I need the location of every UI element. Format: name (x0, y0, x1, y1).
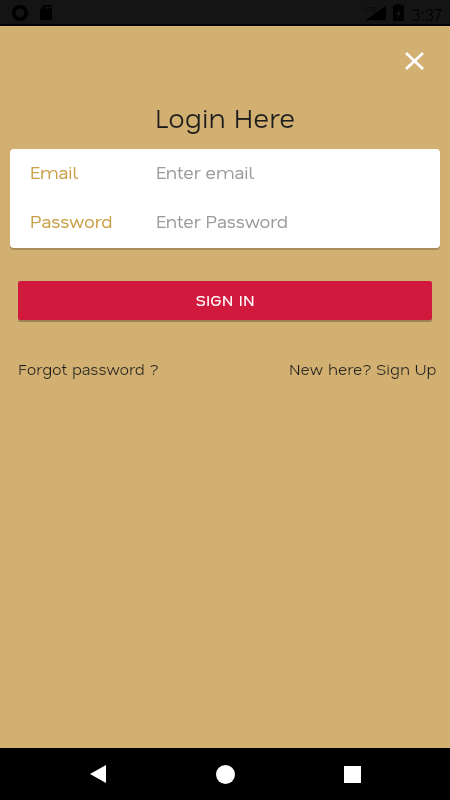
button[interactable]: Password (10, 200, 440, 240)
button[interactable]: New here? Sign Up (281, 352, 445, 385)
button[interactable]: Recent apps (328, 752, 376, 796)
button[interactable]: Back (74, 752, 122, 796)
button[interactable]: Close (396, 43, 432, 79)
staticText: Login Here (0, 99, 450, 135)
button[interactable]: Home (201, 752, 249, 796)
staticText: LTE (364, 4, 377, 14)
staticText: Email (30, 160, 156, 183)
staticText: 3:37 (411, 3, 442, 25)
staticText: Enter email (156, 160, 255, 183)
staticText: New here? Sign Up (289, 358, 437, 379)
staticText: Forgot password ? (18, 358, 159, 379)
staticText: Enter Password (156, 209, 288, 232)
button[interactable]: Email (10, 151, 440, 191)
button[interactable]: SIGN IN (18, 281, 432, 320)
staticText: SIGN IN (196, 290, 255, 310)
staticText: Password (30, 209, 156, 232)
button[interactable]: Forgot password ? (10, 352, 167, 385)
